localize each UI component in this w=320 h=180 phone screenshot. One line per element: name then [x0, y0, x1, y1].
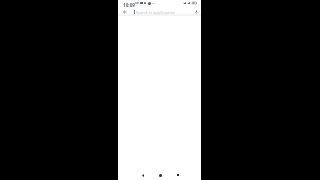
staticText: 10:09	[123, 2, 136, 8]
button[interactable]: Recent apps	[171, 166, 184, 180]
button[interactable]: Navigate up	[121, 8, 129, 16]
button[interactable]: Home	[154, 166, 167, 180]
staticText: Search in app/Lupinta	[136, 10, 176, 15]
button[interactable]: Voice search	[192, 8, 200, 16]
button[interactable]: Back	[136, 166, 149, 180]
